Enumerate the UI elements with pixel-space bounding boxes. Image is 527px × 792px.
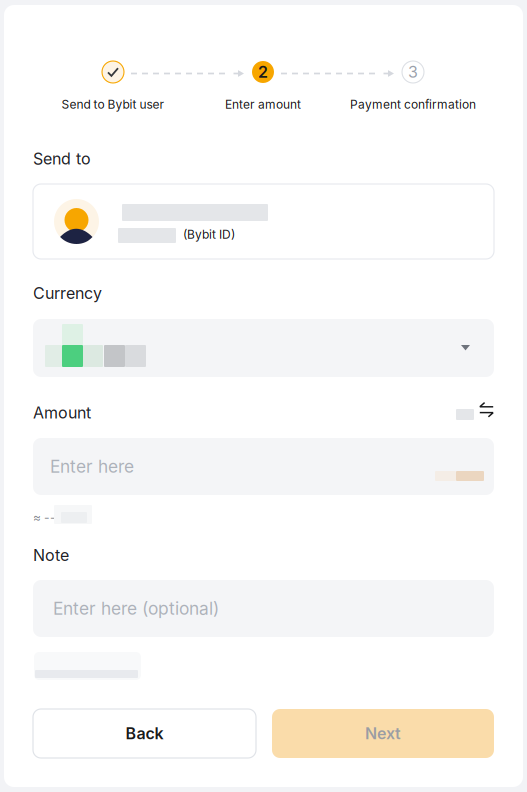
button[interactable]: Next (272, 709, 494, 758)
staticText: Enter amount (225, 97, 301, 111)
staticText: Next (365, 724, 401, 743)
staticText: (Bybit ID) (183, 227, 235, 241)
button[interactable] (33, 319, 494, 377)
staticText: Send to (33, 149, 91, 168)
button[interactable]: Back (33, 709, 256, 758)
staticText: Amount (33, 403, 91, 422)
staticText: ≈ -- (33, 510, 56, 524)
staticText: Enter here (optional) (53, 598, 219, 619)
staticText: Enter here (50, 456, 134, 477)
staticText: Send to Bybit user (61, 97, 164, 111)
staticText: 2 (258, 62, 268, 82)
staticText: Back (125, 724, 163, 743)
staticText: Payment confirmation (350, 97, 476, 111)
staticText: Note (33, 545, 69, 565)
staticText: Currency (33, 283, 102, 303)
staticText: 3 (408, 62, 418, 82)
button[interactable]: (Bybit ID) (33, 184, 494, 259)
